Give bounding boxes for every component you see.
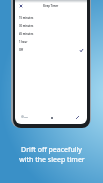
other: Expand player bbox=[76, 116, 79, 119]
button[interactable]: 45 minutes bbox=[15, 30, 87, 38]
button[interactable]: 30 minutes bbox=[15, 22, 87, 30]
staticText: Sleep Timer bbox=[43, 4, 59, 8]
button[interactable]: Expand player bbox=[15, 111, 87, 123]
staticText: Drift off peacefully bbox=[21, 145, 82, 155]
staticText: 45 minutes bbox=[19, 32, 34, 36]
button[interactable]: Close bbox=[17, 2, 24, 9]
staticText: Off bbox=[19, 48, 24, 52]
staticText: with the sleep timer bbox=[19, 155, 85, 165]
button[interactable]: Off bbox=[15, 46, 87, 54]
staticText: 15 minutes bbox=[19, 16, 34, 20]
button[interactable]: 15 minutes bbox=[15, 14, 87, 22]
staticText: 30 minutes bbox=[19, 24, 34, 28]
staticText: 1 hour bbox=[19, 40, 28, 44]
button[interactable]: 1 hour bbox=[15, 38, 87, 46]
